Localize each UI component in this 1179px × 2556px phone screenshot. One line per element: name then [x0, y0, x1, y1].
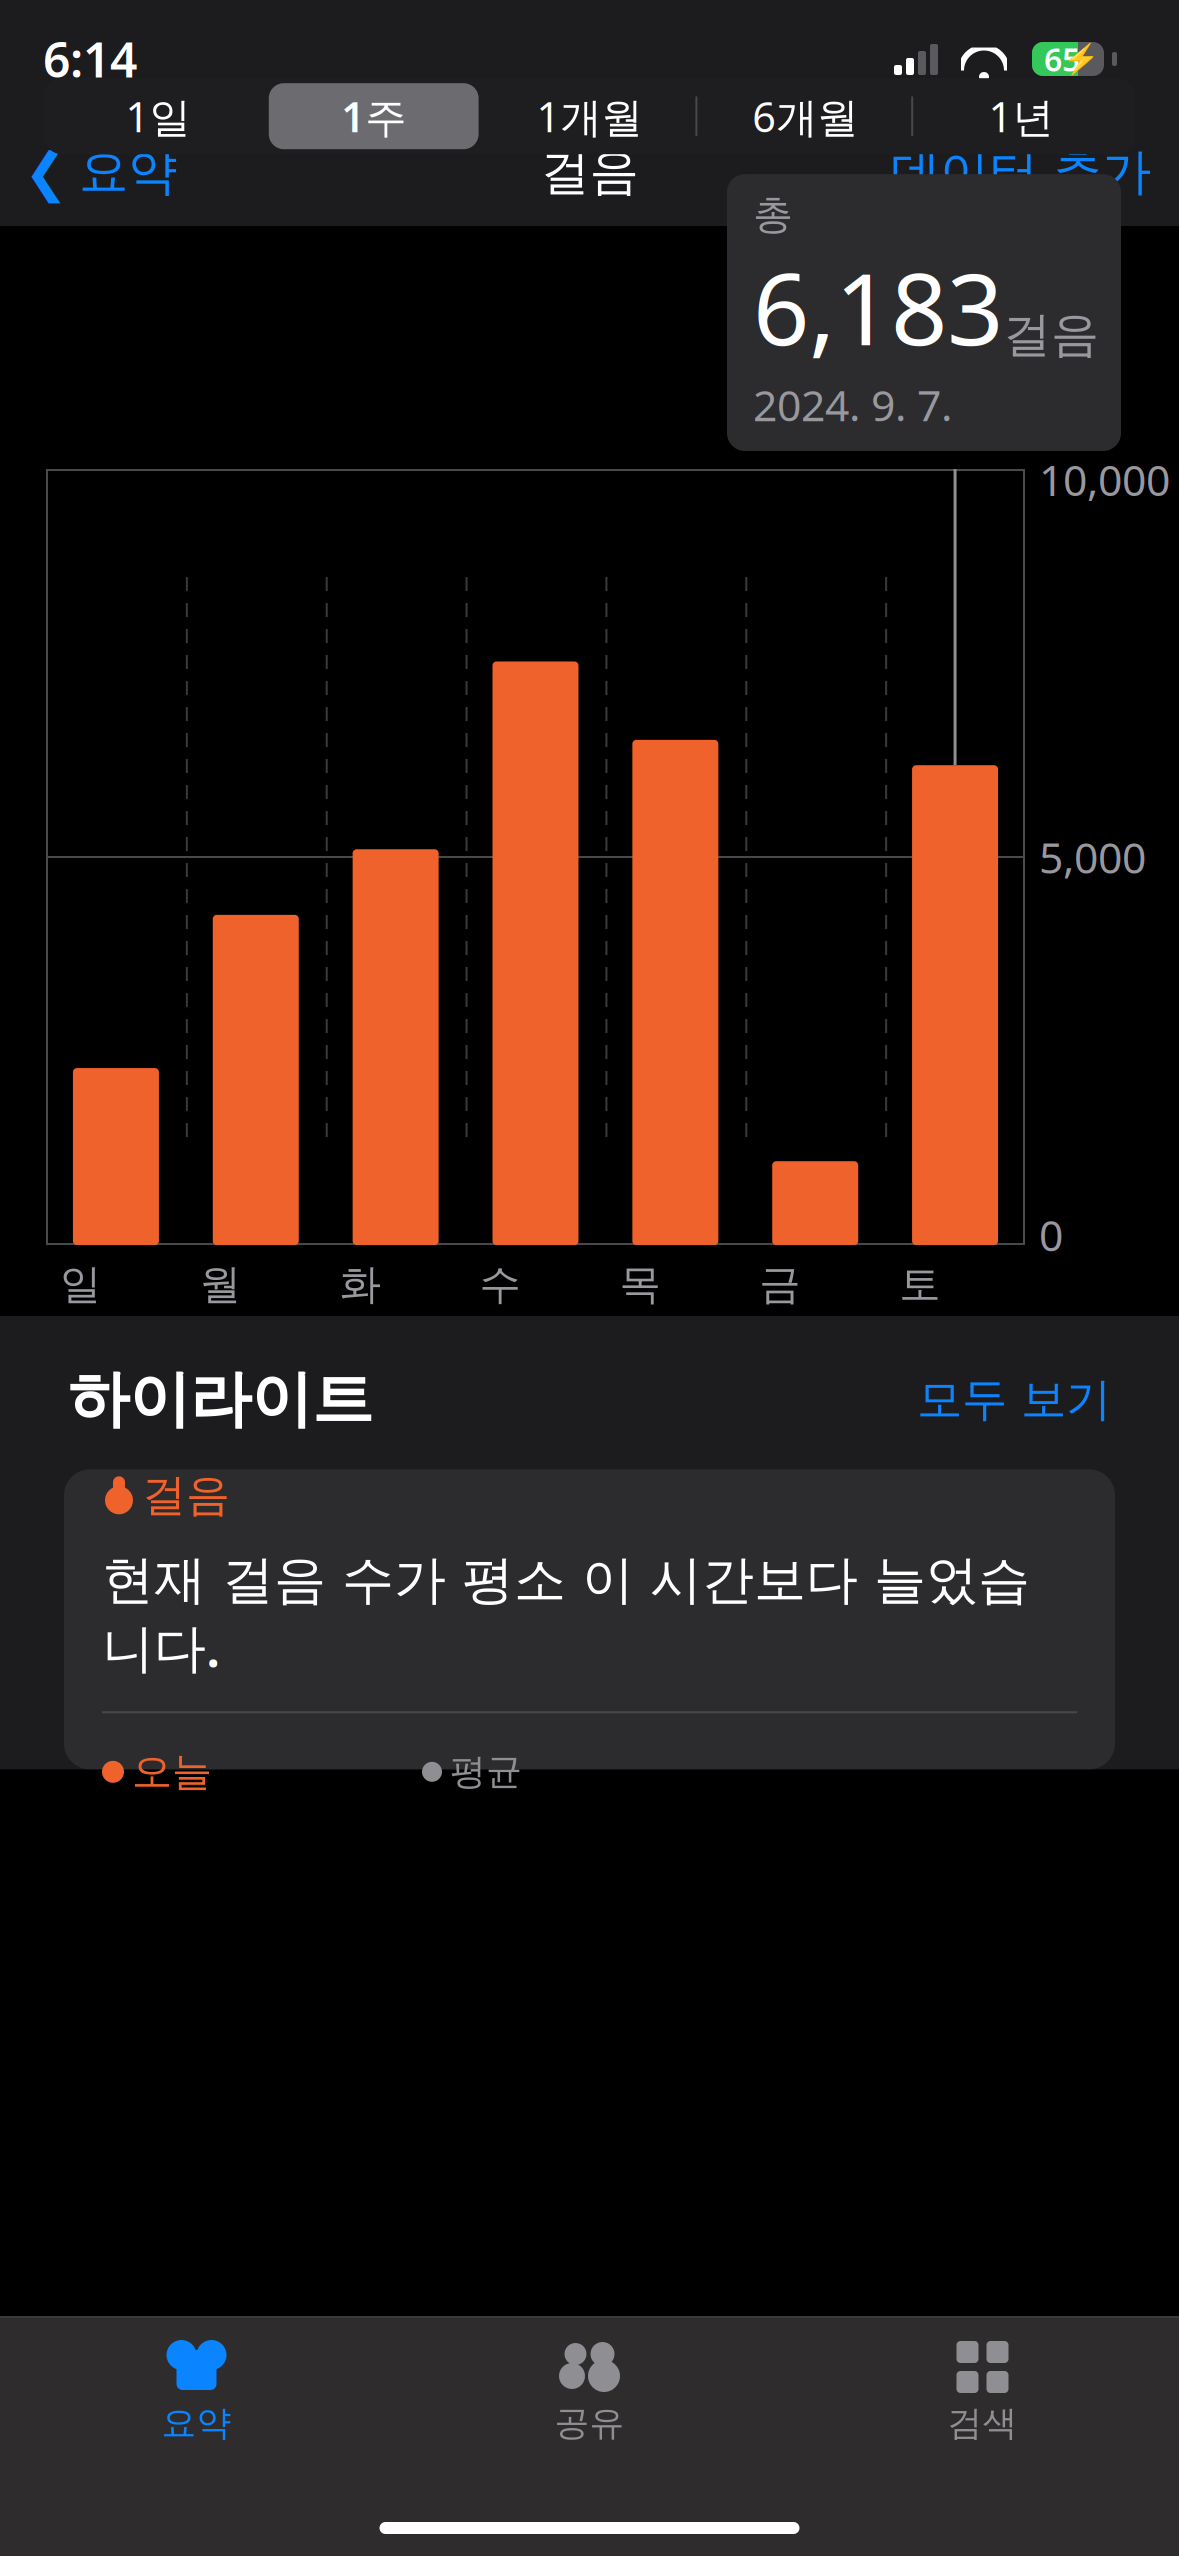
staticText: 10,000	[1039, 451, 1170, 508]
staticText: 화	[340, 1259, 381, 1310]
staticText: 2024. 9. 7.	[753, 376, 952, 433]
staticText: 1개월	[536, 89, 642, 144]
staticText: 총	[753, 190, 793, 239]
staticText: 1주	[341, 89, 406, 144]
staticText: 요약	[79, 142, 177, 202]
staticText: ❮	[24, 142, 69, 202]
button[interactable]: 1년	[913, 78, 1129, 154]
staticText: 토	[899, 1259, 940, 1310]
staticText: 요약	[161, 2402, 231, 2445]
button[interactable]: 1주	[266, 78, 482, 154]
staticText: 평균	[450, 1750, 522, 1794]
staticText: 오늘	[132, 1747, 212, 1796]
staticText: 목	[619, 1259, 660, 1310]
staticText: 일	[60, 1259, 101, 1310]
staticText: 6,183	[753, 241, 1003, 372]
staticText: 걸음	[540, 142, 638, 202]
button[interactable]: 1일	[50, 78, 266, 154]
button[interactable]: 요약	[0, 2318, 393, 2445]
staticText: ⚡	[1063, 42, 1100, 76]
button[interactable]: 공유	[393, 2318, 786, 2445]
staticText: 0	[1039, 1206, 1063, 1263]
button[interactable]: 모두 보기	[917, 1372, 1111, 1427]
staticText: 6개월	[752, 89, 858, 144]
staticText: 수	[480, 1259, 521, 1310]
staticText: 데이터 추가	[891, 142, 1151, 202]
button[interactable]: 검색	[786, 2318, 1179, 2445]
staticText: 공유	[554, 2402, 624, 2445]
button[interactable]: 1개월	[482, 78, 697, 154]
staticText: 65	[1044, 38, 1080, 80]
button[interactable]: 데이터 추가	[891, 132, 1179, 212]
staticText: 1년	[989, 89, 1054, 144]
staticText: 걸음	[142, 1468, 230, 1522]
staticText: 금	[759, 1259, 800, 1310]
button[interactable]: 걸음	[0, 1437, 1179, 1769]
staticText: 계산할 수 없음	[783, 1395, 1081, 1451]
button[interactable]: 6개월	[697, 78, 913, 154]
staticText: 5,000	[1039, 829, 1146, 885]
staticText: 1일	[125, 89, 190, 144]
button[interactable]: 추세	[0, 1354, 1179, 1492]
staticText: 월	[200, 1259, 241, 1310]
staticText: 하이라이트	[68, 1362, 373, 1437]
staticText: 걸음	[1003, 305, 1099, 364]
staticText: 모두 보기	[917, 1372, 1111, 1427]
staticText: 6:14	[43, 27, 137, 91]
staticText: 현재 걸음 수가 평소 이 시간보다 늘었습니다.	[102, 1548, 1030, 1681]
staticText: 추세	[98, 1395, 188, 1451]
staticText: 검색	[947, 2402, 1017, 2445]
button[interactable]: ❮	[0, 132, 177, 212]
